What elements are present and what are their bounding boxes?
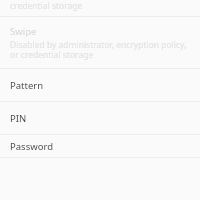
button[interactable]: Swipe bbox=[0, 17, 200, 68]
staticText: Swipe bbox=[10, 25, 37, 38]
staticText: Password bbox=[10, 140, 53, 153]
staticText: PIN bbox=[10, 112, 27, 125]
button[interactable]: PIN bbox=[0, 102, 200, 134]
button[interactable]: Pattern bbox=[0, 69, 200, 101]
staticText: Pattern bbox=[10, 79, 44, 92]
button[interactable]: credential storage bbox=[0, 0, 200, 16]
staticText: credential storage bbox=[10, 0, 83, 12]
staticText: Disabled by administrator, encryption po… bbox=[10, 39, 190, 60]
button[interactable]: Password bbox=[0, 135, 200, 157]
